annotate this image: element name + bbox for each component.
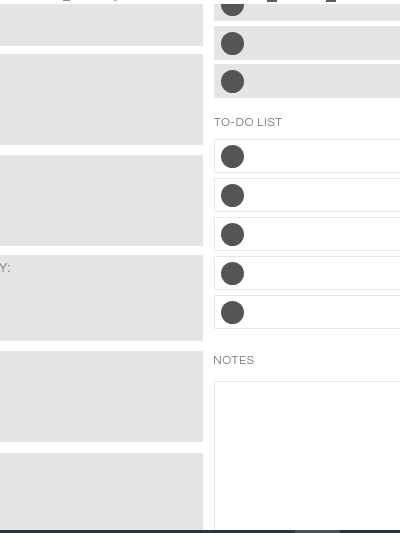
button[interactable]: Schedule entry (214, 64, 400, 98)
button[interactable]: Notes area (214, 381, 400, 533)
staticText: NOTES (213, 354, 255, 366)
button[interactable]: Schedule entry (214, 26, 400, 60)
button[interactable]: To-do item (214, 139, 400, 173)
button[interactable]: Schedule entry (214, 4, 400, 21)
button[interactable]: To-do item (214, 295, 400, 329)
staticText: Y: (0, 261, 11, 274)
button[interactable]: To-do item (214, 256, 400, 290)
staticText: TO-DO LIST (214, 116, 283, 128)
button[interactable]: To-do item (214, 178, 400, 212)
button[interactable]: To-do item (214, 217, 400, 251)
